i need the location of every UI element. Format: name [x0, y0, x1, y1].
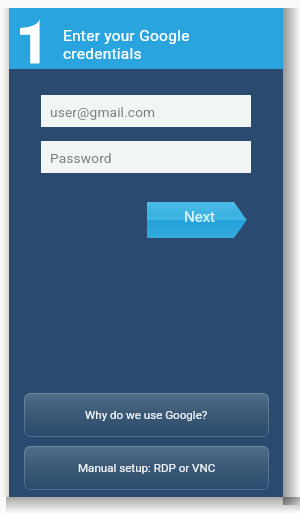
button[interactable]: Why do we use Google? — [24, 393, 269, 437]
button[interactable]: Manual setup: RDP or VNC — [24, 446, 269, 490]
button[interactable]: Next — [147, 202, 247, 238]
button[interactable]: Password — [41, 141, 251, 173]
other: Step 1 — [9, 8, 283, 69]
staticText: Manual setup: RDP or VNC — [78, 461, 216, 475]
staticText: Next — [184, 208, 216, 226]
button[interactable]: user@gmail.com — [41, 95, 251, 127]
staticText: Why do we use Google? — [85, 408, 208, 422]
staticText: Password — [50, 150, 112, 166]
staticText: user@gmail.com — [50, 104, 156, 120]
staticText: Enter your Google credentials — [63, 27, 190, 63]
